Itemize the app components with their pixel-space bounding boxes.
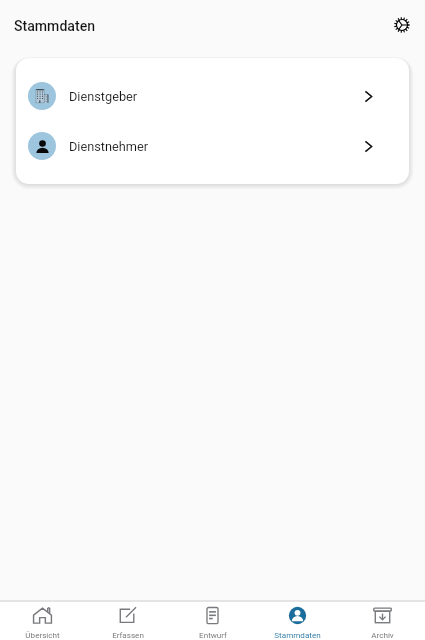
staticText: Dienstgeber <box>69 89 138 104</box>
staticText: Übersicht <box>25 630 60 639</box>
button[interactable]: Übersicht <box>0 602 85 640</box>
button[interactable]: Dienstnehmer <box>16 121 409 171</box>
staticText: Stammdaten <box>274 630 321 639</box>
staticText: Archiv <box>371 630 394 639</box>
staticText: Erfassen <box>112 630 144 639</box>
button[interactable]: Stammdaten <box>255 602 340 640</box>
button[interactable]: Entwurf <box>170 602 255 640</box>
button[interactable]: Dienstgeber <box>16 71 409 121</box>
staticText: Dienstnehmer <box>69 139 149 154</box>
button[interactable]: Archiv <box>340 602 425 640</box>
button[interactable]: Erfassen <box>85 602 170 640</box>
button[interactable]: Settings <box>385 8 419 42</box>
staticText: Stammdaten <box>14 18 96 35</box>
staticText: Entwurf <box>199 630 227 639</box>
